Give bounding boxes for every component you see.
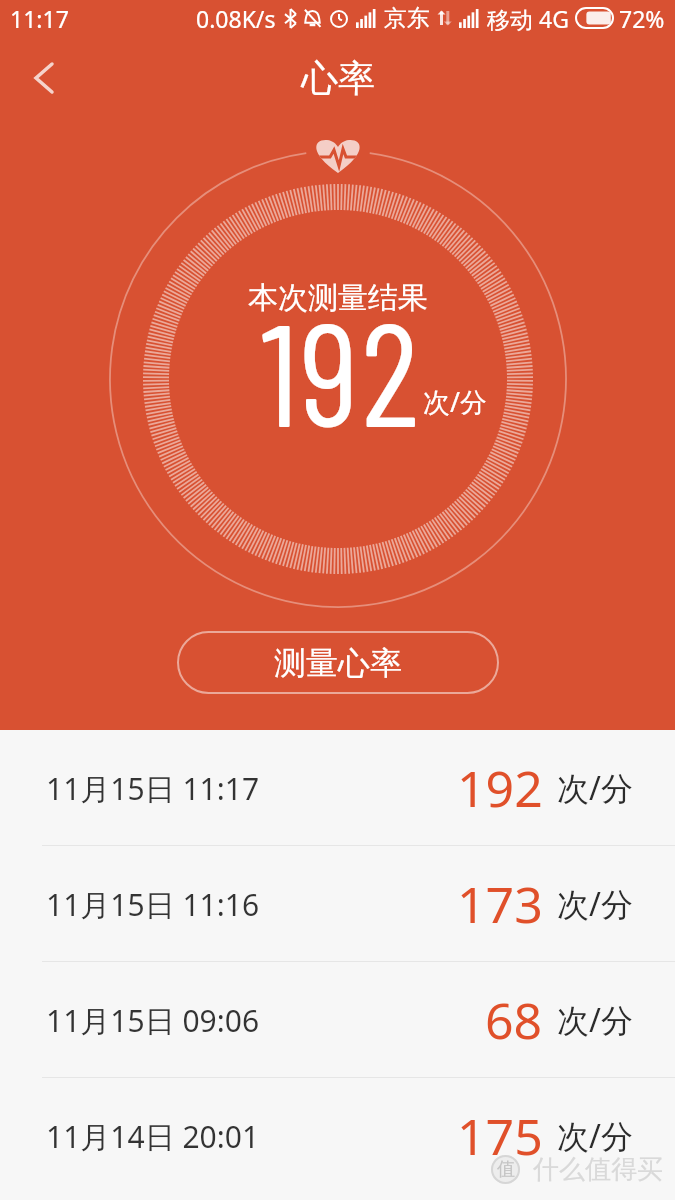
- staticText: 11:17: [10, 3, 69, 34]
- button[interactable]: [24, 58, 64, 98]
- staticText: 测量心率: [274, 643, 402, 683]
- staticText: 68: [485, 986, 543, 1054]
- staticText: 72%: [619, 3, 665, 34]
- staticText: 京东: [384, 4, 430, 33]
- staticText: 173: [457, 870, 543, 938]
- staticText: 11月14日 20:01: [46, 1116, 260, 1157]
- staticText: 什么值得买: [533, 1153, 663, 1186]
- button[interactable]: 11月15日 11:16: [0, 846, 675, 962]
- button[interactable]: 11月15日 09:06: [0, 962, 675, 1078]
- staticText: 次/分: [557, 1114, 633, 1158]
- staticText: 本次测量结果: [248, 279, 428, 317]
- button[interactable]: 测量心率: [177, 631, 499, 694]
- staticText: 192: [457, 754, 543, 822]
- staticText: 次/分: [557, 766, 633, 810]
- staticText: 0.08K/s: [196, 3, 276, 34]
- staticText: 次/分: [557, 882, 633, 926]
- staticText: 192: [261, 283, 422, 456]
- staticText: 11月15日 11:16: [46, 884, 260, 925]
- staticText: 值: [497, 1158, 515, 1181]
- staticText: 次/分: [423, 383, 488, 420]
- button[interactable]: 11月15日 11:17: [0, 730, 675, 846]
- staticText: 11月15日 09:06: [46, 1000, 260, 1041]
- staticText: 次/分: [557, 998, 633, 1042]
- button[interactable]: 11月14日 20:01: [0, 1078, 675, 1194]
- staticText: 175: [457, 1102, 543, 1170]
- staticText: 心率: [301, 55, 375, 102]
- staticText: 11月15日 11:17: [46, 768, 260, 809]
- staticText: 移动 4G: [487, 3, 569, 34]
